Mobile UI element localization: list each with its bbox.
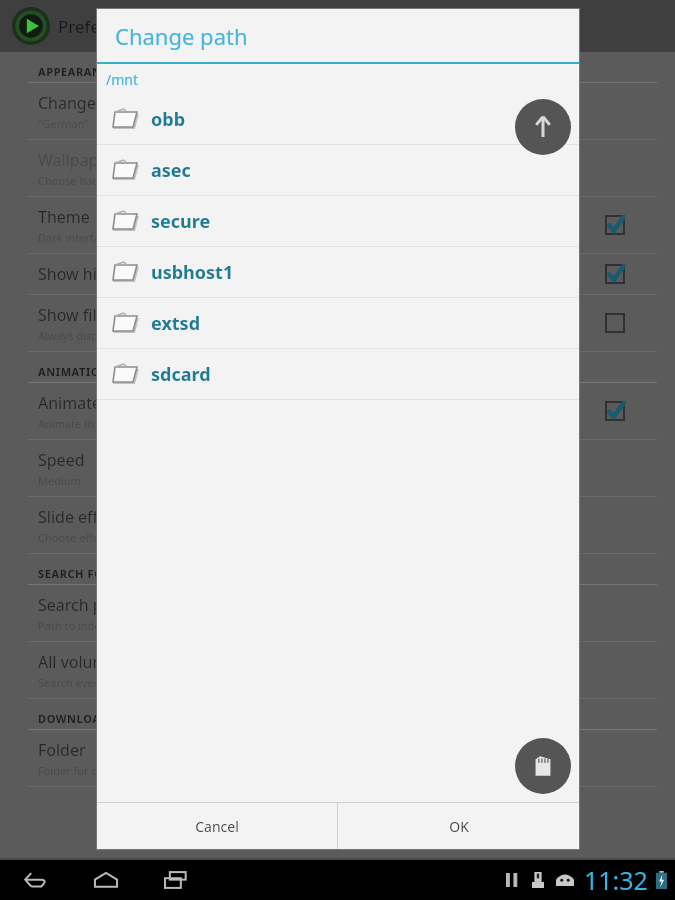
button[interactable]: obb xyxy=(97,94,579,145)
staticText: asec xyxy=(151,158,191,183)
staticText: Preferences xyxy=(58,15,153,38)
staticText: Search path xyxy=(38,594,128,616)
staticText: ANIMATION xyxy=(38,364,110,379)
staticText: Medium xyxy=(38,473,81,488)
staticText: 11:32 xyxy=(584,863,648,897)
staticText: SEARCH FOLDERS xyxy=(38,566,141,581)
staticText: Path to index xyxy=(38,618,107,633)
button[interactable]: extsd xyxy=(97,298,579,349)
staticText: Show hidden files xyxy=(38,263,170,285)
button[interactable]: secure xyxy=(97,196,579,247)
button[interactable]: usbhost1 xyxy=(97,247,579,298)
button[interactable]: OK xyxy=(338,803,579,849)
staticText: Change path xyxy=(115,21,248,51)
staticText: Animate transitions xyxy=(38,392,185,414)
staticText: obb xyxy=(151,107,186,132)
staticText: Change language xyxy=(38,92,171,114)
button[interactable]: Go up one folder xyxy=(515,99,571,155)
staticText: /mnt xyxy=(106,70,139,89)
staticText: Speed xyxy=(38,449,85,471)
staticText: "German" xyxy=(38,116,89,131)
staticText: APPEARANCE xyxy=(38,64,117,79)
staticText: Choose background xyxy=(38,173,142,188)
staticText: secure xyxy=(151,209,211,234)
staticText: Wallpaper xyxy=(38,149,115,171)
staticText: Dark interface xyxy=(38,230,112,245)
staticText: Animate list scroll xyxy=(38,416,130,431)
button[interactable]: sdcard xyxy=(97,349,579,400)
staticText: Folder for downloads xyxy=(38,763,148,778)
button[interactable]: Cancel xyxy=(97,803,337,849)
staticText: Always display size xyxy=(38,328,136,343)
staticText: extsd xyxy=(151,311,201,336)
staticText: Search everything xyxy=(38,675,131,690)
staticText: Theme xyxy=(38,206,90,228)
button[interactable]: Recent apps xyxy=(158,862,194,898)
button[interactable]: Storage xyxy=(515,738,571,794)
staticText: Show file size xyxy=(38,304,139,326)
staticText: Cancel xyxy=(195,817,239,836)
staticText: sdcard xyxy=(151,362,211,387)
staticText: All volumes xyxy=(38,651,125,673)
button[interactable]: Home xyxy=(88,862,124,898)
button[interactable]: Back xyxy=(18,862,54,898)
staticText: DOWNLOAD xyxy=(38,711,110,726)
button[interactable]: asec xyxy=(97,145,579,196)
staticText: Folder xyxy=(38,739,86,761)
staticText: OK xyxy=(449,817,469,836)
staticText: Slide effect xyxy=(38,506,121,528)
staticText: usbhost1 xyxy=(151,260,234,285)
staticText: Choose effect xyxy=(38,530,109,545)
